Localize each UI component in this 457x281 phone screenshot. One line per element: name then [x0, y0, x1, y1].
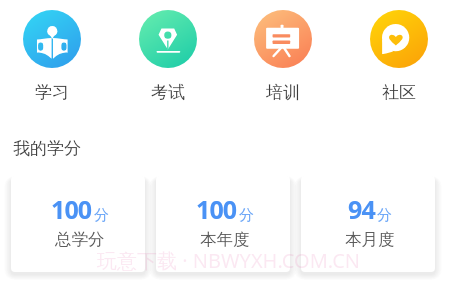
button[interactable]: 培训 [237, 10, 329, 103]
staticText: 我的学分 [13, 138, 81, 159]
button[interactable]: 100 [156, 176, 290, 272]
staticText: 分 [94, 206, 109, 225]
button[interactable]: 94 [301, 176, 435, 272]
staticText: 本年度 [200, 229, 250, 250]
staticText: 分 [377, 206, 392, 225]
staticText: 学习 [35, 82, 69, 103]
staticText: 100 [196, 192, 237, 226]
staticText: 培训 [266, 82, 300, 103]
button[interactable]: 社区 [353, 10, 445, 103]
staticText: 100 [51, 192, 92, 226]
staticText: 94 [348, 192, 375, 226]
staticText: 社区 [382, 82, 416, 103]
button[interactable]: 100 [11, 176, 145, 272]
staticText: 考试 [151, 82, 185, 103]
button[interactable]: 学习 [6, 10, 98, 103]
staticText: 玩意下载 · NBWYXH.COM.CN [97, 247, 360, 274]
staticText: 分 [239, 206, 254, 225]
button[interactable]: 考试 [122, 10, 214, 103]
staticText: 本月度 [345, 229, 395, 250]
staticText: 总学分 [55, 229, 105, 250]
